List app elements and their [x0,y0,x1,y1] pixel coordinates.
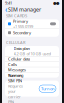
staticText: Cellular data [8,56,30,62]
staticText: Requires your carrier PIN [8,83,23,103]
staticText: SIM CARDS [6,13,27,18]
staticText: 9:41 [5,0,12,6]
staticText: Primary [13,18,28,24]
staticText: SIM manager [8,6,41,13]
button[interactable]: Turn on [39,85,56,92]
staticText: ‹ [5,4,7,15]
staticText: Data plan [13,46,29,51]
button[interactable]: ‹ [5,4,7,15]
staticText: Messages [8,67,26,72]
staticText: CELLULAR [6,40,25,45]
staticText: Turn on SIM PIN [8,73,22,83]
staticText: Secondary [13,30,31,35]
staticText: Calls [8,62,17,67]
staticText: 4.2 GB of 10 GB used [13,51,50,56]
staticText: Roaming [8,72,23,78]
staticText: Turn on [41,86,54,91]
staticText: +1 555 0199 [13,24,33,29]
staticText: ●● [53,1,59,5]
